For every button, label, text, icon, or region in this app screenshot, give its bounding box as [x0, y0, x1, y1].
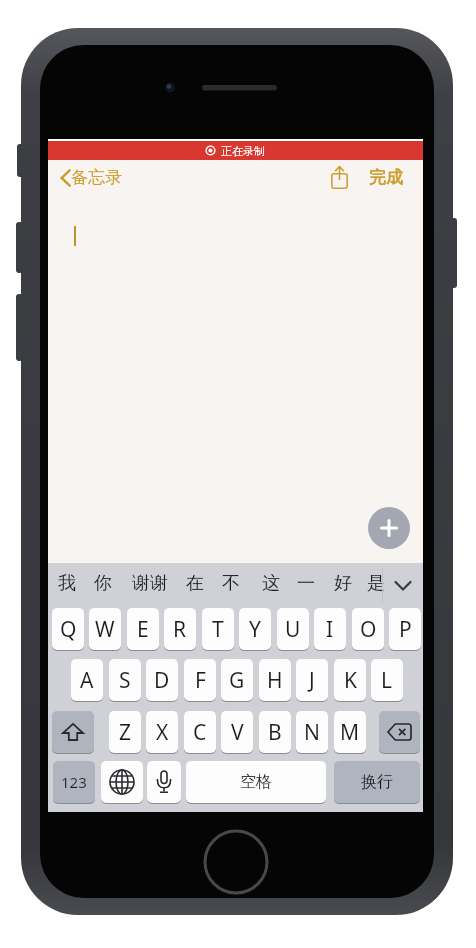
button[interactable]: 换行	[334, 761, 420, 803]
button[interactable]: 是	[367, 572, 390, 599]
button[interactable]	[379, 711, 420, 753]
button[interactable]: 空格	[186, 761, 326, 803]
staticText: D	[154, 666, 170, 695]
button[interactable]: J	[296, 659, 328, 701]
button[interactable]: R	[164, 608, 196, 650]
staticText: C	[193, 718, 207, 747]
staticText: 你	[94, 572, 112, 595]
staticText: Y	[249, 615, 261, 644]
staticText: S	[119, 666, 131, 695]
button[interactable]: 123	[53, 761, 95, 803]
button[interactable]: 备忘录	[56, 165, 156, 193]
staticText: 好	[334, 572, 352, 595]
staticText: W	[95, 615, 115, 644]
button[interactable]	[52, 711, 94, 753]
staticText: U	[285, 615, 301, 644]
button[interactable]: C	[184, 711, 216, 753]
staticText: 这	[262, 572, 280, 595]
button[interactable]: B	[259, 711, 291, 753]
button[interactable]: 好	[334, 572, 357, 599]
staticText: 完成	[369, 167, 403, 188]
button[interactable]	[325, 163, 353, 193]
button[interactable]: O	[352, 608, 384, 650]
button[interactable]: 完成	[363, 165, 415, 193]
button[interactable]	[101, 761, 143, 803]
staticText: E	[137, 615, 149, 644]
button[interactable]: 在	[186, 572, 209, 599]
button[interactable]: D	[146, 659, 178, 701]
staticText: G	[229, 666, 245, 695]
button[interactable]: 我	[58, 572, 81, 599]
staticText: 正在录制	[221, 144, 265, 158]
staticText: 谢谢	[132, 572, 168, 595]
button[interactable]: Q	[52, 608, 84, 650]
staticText: 我	[58, 572, 76, 595]
button[interactable]: 正在录制	[48, 141, 423, 160]
button[interactable]: V	[221, 711, 253, 753]
staticText: 空格	[240, 772, 272, 792]
button[interactable]	[147, 761, 181, 803]
staticText: 在	[186, 572, 204, 595]
staticText: M	[340, 718, 360, 747]
button[interactable]: X	[146, 711, 178, 753]
staticText: 不	[222, 572, 240, 595]
staticText: 备忘录	[71, 167, 122, 188]
button[interactable]: 一	[297, 572, 320, 599]
staticText: N	[304, 718, 320, 747]
button[interactable]: 不	[222, 572, 245, 599]
button[interactable]: 你	[94, 572, 117, 599]
button[interactable]: W	[89, 608, 121, 650]
button[interactable]: M	[334, 711, 366, 753]
button[interactable]: I	[314, 608, 346, 650]
staticText: 一	[297, 572, 315, 595]
staticText: F	[195, 666, 206, 695]
staticText: R	[173, 615, 187, 644]
button[interactable]: E	[127, 608, 159, 650]
staticText: 换行	[361, 772, 393, 792]
staticText: K	[344, 666, 357, 695]
button[interactable]: F	[184, 659, 216, 701]
staticText: Q	[60, 615, 77, 644]
button[interactable]: T	[202, 608, 234, 650]
button[interactable]: Z	[109, 711, 141, 753]
staticText: I	[326, 615, 334, 644]
button[interactable]: 谢谢	[132, 572, 174, 599]
button[interactable]: G	[221, 659, 253, 701]
staticText: A	[80, 666, 94, 695]
button[interactable]: N	[296, 711, 328, 753]
button[interactable]: A	[71, 659, 103, 701]
staticText: B	[268, 718, 282, 747]
button[interactable]: U	[277, 608, 309, 650]
staticText: H	[267, 666, 283, 695]
button[interactable]	[368, 507, 410, 549]
staticText: V	[231, 718, 244, 747]
staticText: T	[212, 615, 224, 644]
staticText: J	[309, 666, 315, 695]
button[interactable]: L	[371, 659, 403, 701]
staticText: 123	[61, 772, 87, 792]
button[interactable]: K	[334, 659, 366, 701]
staticText: 是	[367, 572, 385, 595]
button[interactable]	[386, 568, 420, 604]
button[interactable]: Y	[239, 608, 271, 650]
staticText: Z	[119, 718, 132, 747]
button[interactable]: S	[109, 659, 141, 701]
staticText: P	[399, 615, 412, 644]
staticText: O	[360, 615, 377, 644]
button[interactable]: H	[259, 659, 291, 701]
button[interactable]: P	[389, 608, 421, 650]
staticText: L	[381, 666, 393, 695]
staticText: X	[156, 718, 169, 747]
button[interactable]: 这	[262, 572, 285, 599]
